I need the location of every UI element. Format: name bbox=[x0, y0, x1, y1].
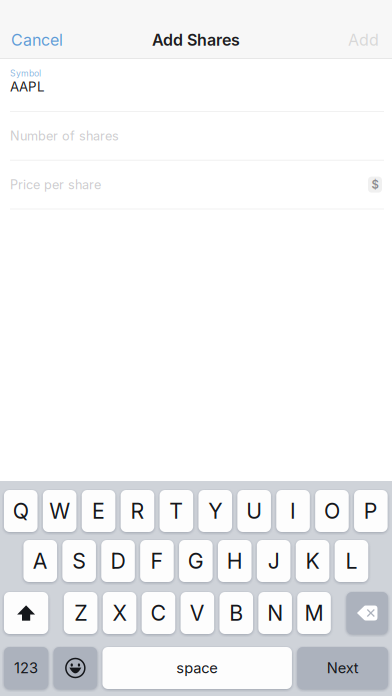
button[interactable]: T bbox=[160, 490, 193, 532]
staticText: J bbox=[268, 548, 280, 574]
button[interactable]: Next bbox=[297, 647, 388, 689]
button[interactable]: G bbox=[179, 540, 213, 582]
button[interactable]: D bbox=[101, 540, 135, 582]
button[interactable]: Z bbox=[64, 592, 97, 634]
button[interactable]: A bbox=[23, 540, 57, 582]
staticText: R bbox=[130, 498, 144, 524]
button[interactable]: K bbox=[296, 540, 329, 582]
button[interactable]: O bbox=[315, 490, 349, 532]
button[interactable]: Symbol bbox=[0, 59, 392, 111]
button[interactable]: W bbox=[43, 490, 76, 532]
button[interactable]: B bbox=[219, 592, 253, 634]
button[interactable]: 123 bbox=[4, 647, 48, 689]
staticText: AAPL bbox=[10, 78, 45, 95]
staticText: L bbox=[345, 548, 357, 574]
button[interactable]: L bbox=[335, 540, 368, 582]
staticText: B bbox=[229, 600, 243, 626]
button[interactable]: R bbox=[121, 490, 154, 532]
staticText: Z bbox=[74, 600, 87, 626]
staticText: X bbox=[112, 600, 126, 626]
staticText: Add Shares bbox=[152, 30, 240, 50]
button[interactable]: Delete bbox=[346, 592, 388, 634]
staticText: Next bbox=[327, 659, 359, 677]
button[interactable]: V bbox=[181, 592, 214, 634]
staticText: Cancel bbox=[11, 30, 63, 50]
button[interactable]: Number of shares bbox=[0, 112, 392, 160]
button[interactable]: M bbox=[297, 592, 331, 634]
staticText: C bbox=[150, 600, 166, 626]
button[interactable]: Add bbox=[319, 20, 392, 60]
staticText: Number of shares bbox=[10, 128, 119, 143]
button[interactable]: X bbox=[103, 592, 136, 634]
staticText: T bbox=[169, 498, 183, 524]
button[interactable]: F bbox=[140, 540, 174, 582]
button[interactable]: P bbox=[354, 490, 388, 532]
staticText: Price per share bbox=[10, 177, 101, 192]
staticText: W bbox=[49, 498, 70, 524]
staticText: D bbox=[111, 548, 126, 574]
button[interactable]: Shift bbox=[4, 592, 48, 634]
button[interactable]: N bbox=[258, 592, 292, 634]
staticText: Q bbox=[13, 498, 29, 524]
staticText: A bbox=[33, 548, 48, 574]
staticText: H bbox=[227, 548, 243, 574]
button[interactable]: U bbox=[237, 490, 271, 532]
staticText: O bbox=[324, 498, 340, 524]
button[interactable]: Y bbox=[198, 490, 232, 532]
staticText: M bbox=[305, 600, 324, 626]
button[interactable]: Emoji keyboard bbox=[54, 647, 97, 689]
button[interactable]: Q bbox=[4, 490, 38, 532]
staticText: E bbox=[92, 498, 105, 524]
button[interactable]: C bbox=[142, 592, 175, 634]
staticText: Add bbox=[348, 30, 379, 50]
staticText: U bbox=[246, 498, 262, 524]
staticText: I bbox=[290, 498, 296, 524]
staticText: Y bbox=[208, 498, 222, 524]
staticText: V bbox=[190, 600, 205, 626]
staticText: G bbox=[188, 548, 204, 574]
staticText: $ bbox=[371, 178, 378, 191]
button[interactable]: J bbox=[257, 540, 290, 582]
staticText: N bbox=[267, 600, 283, 626]
button[interactable]: I bbox=[276, 490, 310, 532]
staticText: F bbox=[150, 548, 163, 574]
button[interactable]: Cancel bbox=[0, 20, 83, 60]
staticText: K bbox=[306, 548, 320, 574]
button[interactable]: Price per share bbox=[0, 161, 392, 209]
button[interactable]: space bbox=[102, 647, 292, 689]
button[interactable]: S bbox=[62, 540, 96, 582]
button[interactable]: E bbox=[82, 490, 115, 532]
staticText: space bbox=[176, 659, 218, 677]
staticText: 123 bbox=[14, 659, 38, 677]
button[interactable]: H bbox=[218, 540, 252, 582]
staticText: Symbol bbox=[10, 68, 41, 78]
staticText: P bbox=[364, 498, 378, 524]
staticText: S bbox=[72, 548, 86, 574]
